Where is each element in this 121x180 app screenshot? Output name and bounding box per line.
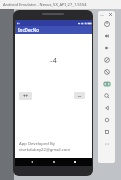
button[interactable]: Close: [108, 12, 113, 17]
button[interactable]: Take screenshot: [98, 78, 115, 90]
button[interactable]: Home: [98, 114, 115, 126]
button[interactable]: Zoom: [98, 90, 115, 102]
button[interactable]: Volume down: [98, 42, 115, 54]
staticText: IncDecNo: [18, 27, 39, 33]
button[interactable]: Overview: [98, 126, 115, 138]
button[interactable]: Rotate left: [98, 54, 115, 66]
staticText: -4: [50, 56, 57, 66]
staticText: vivekdubey22@gmail.com: [19, 147, 71, 153]
staticText: ++: [23, 93, 29, 99]
button[interactable]: Back: [98, 102, 115, 114]
staticText: Android Emulator - Nexus_5X_API_27_1.555…: [3, 2, 87, 7]
button[interactable]: Home: [50, 158, 58, 166]
button[interactable]: Power: [98, 18, 115, 30]
button[interactable]: ++: [19, 92, 32, 100]
button[interactable]: More: [98, 138, 115, 150]
button[interactable]: Recent apps: [71, 158, 79, 166]
button[interactable]: Back: [28, 158, 36, 166]
button[interactable]: Rotate right: [98, 66, 115, 78]
staticText: --: [78, 93, 81, 99]
button[interactable]: Volume up: [98, 30, 115, 42]
staticText: App Developed By: [19, 141, 55, 147]
button[interactable]: --: [74, 92, 85, 99]
staticText: —: [100, 12, 104, 17]
